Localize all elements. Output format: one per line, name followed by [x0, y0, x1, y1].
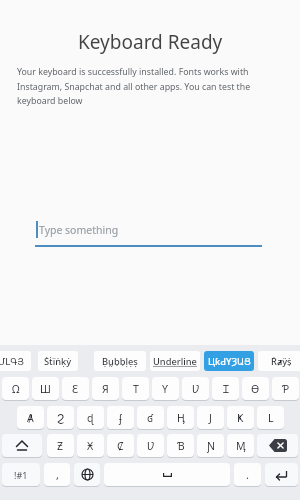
button[interactable]: Ɛ: [62, 377, 89, 400]
button[interactable]: Ӎ: [227, 434, 254, 457]
button[interactable]: Type something: [35, 218, 262, 247]
button[interactable]: !#1: [2, 463, 40, 486]
staticText: Ḅṵḅḅḷẹṣ: [102, 355, 138, 368]
button[interactable]: Ṙⱥÿṩ: [258, 351, 300, 371]
button[interactable]: L: [257, 406, 284, 429]
button[interactable]: Ƶ: [47, 434, 74, 457]
button[interactable]: Ј: [197, 406, 224, 429]
staticText: Ⱥ: [27, 411, 34, 425]
staticText: .: [246, 467, 249, 482]
staticText: Ṡṫïṅḳẏ: [44, 355, 72, 368]
button[interactable]: Ӿ: [77, 434, 104, 457]
button[interactable]: ʛ: [137, 406, 164, 429]
staticText: !#1: [14, 469, 28, 481]
staticText: Ȼ: [117, 439, 124, 453]
button[interactable]: Ʋ: [137, 434, 164, 457]
staticText: Ɓ: [177, 439, 185, 453]
staticText: Ӊ: [177, 411, 185, 425]
button[interactable]: ,: [44, 463, 70, 486]
staticText: ʛ: [147, 411, 154, 425]
button[interactable]: [2, 434, 42, 457]
staticText: L: [268, 411, 274, 425]
staticText: Ƴ: [162, 382, 169, 396]
button[interactable]: [74, 463, 100, 486]
staticText: Ɛ: [72, 382, 79, 396]
button[interactable]: ʄ: [107, 406, 134, 429]
button[interactable]: Ȼ: [107, 434, 134, 457]
button[interactable]: ɖ: [77, 406, 104, 429]
button[interactable]: Ҝ: [227, 406, 254, 429]
button[interactable]: [257, 434, 298, 457]
button[interactable]: Ƥ: [272, 377, 299, 400]
staticText: Ш: [40, 382, 51, 396]
staticText: ՄԼԳՅ: [0, 356, 25, 367]
button[interactable]: ՄԼԳՅ: [0, 351, 31, 371]
button[interactable]: Underline: [150, 351, 200, 371]
button[interactable]: Ɲ: [197, 434, 224, 457]
staticText: Ƥ: [282, 382, 290, 396]
button[interactable]: [265, 463, 298, 486]
staticText: Ѳ: [251, 382, 260, 396]
staticText: Type something: [39, 223, 119, 237]
button[interactable]: Ӊ: [167, 406, 194, 429]
staticText: Your keyboard is successfully installed.…: [17, 66, 251, 107]
button[interactable]: Ɓ: [167, 434, 194, 457]
button[interactable]: Ʋ: [182, 377, 209, 400]
staticText: Ӿ: [87, 439, 94, 453]
button[interactable]: [104, 463, 230, 486]
button[interactable]: Ѳ: [242, 377, 269, 400]
button[interactable]: Ⱥ: [17, 406, 44, 429]
button[interactable]: Ṡṫïṅḳẏ: [38, 351, 78, 371]
staticText: Ƶ: [57, 439, 64, 453]
button[interactable]: Ḅṵḅḅḷẹṣ: [94, 351, 146, 371]
staticText: Ɲ: [207, 439, 215, 453]
staticText: Ӎ: [236, 439, 246, 453]
button[interactable]: T: [122, 377, 149, 400]
staticText: ,: [56, 467, 59, 482]
button[interactable]: Ω: [2, 377, 29, 400]
staticText: Ω: [12, 382, 20, 396]
staticText: Ј: [209, 411, 212, 425]
staticText: T: [133, 382, 139, 396]
button[interactable]: .: [234, 463, 261, 486]
button[interactable]: Ш: [32, 377, 59, 400]
button[interactable]: Ϩ: [47, 406, 74, 429]
staticText: Я: [102, 382, 109, 396]
staticText: ɖ: [87, 411, 94, 425]
staticText: Ϩ: [57, 412, 65, 424]
staticText: Ʋ: [192, 382, 200, 396]
staticText: Ɪ: [223, 382, 229, 396]
staticText: Ṙⱥÿṩ: [271, 355, 292, 368]
button[interactable]: Ƴ: [152, 377, 179, 400]
staticText: ЦƙԀYȜԱՑ: [208, 355, 251, 368]
staticText: ʄ: [119, 411, 122, 425]
staticText: Ʋ: [147, 439, 155, 453]
staticText: Underline: [153, 355, 197, 368]
button[interactable]: ЦƙԀYȜԱՑ: [204, 351, 254, 371]
staticText: Ҝ: [237, 411, 244, 425]
button[interactable]: Ɪ: [212, 377, 239, 400]
button[interactable]: Я: [92, 377, 119, 400]
staticText: Keyboard Ready: [78, 29, 223, 55]
